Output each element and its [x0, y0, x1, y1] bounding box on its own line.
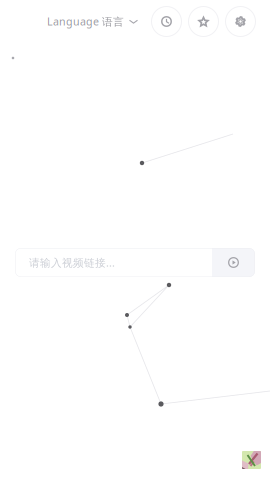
staticText: 请输入视频链接...: [29, 255, 115, 270]
staticText: Language 语言: [47, 14, 124, 29]
button[interactable]: 请输入视频链接...: [15, 248, 212, 277]
button[interactable]: Settings: [225, 6, 256, 37]
button[interactable]: History: [151, 6, 182, 37]
button[interactable]: Language 语言: [47, 8, 138, 35]
button[interactable]: Parse video link: [212, 248, 255, 277]
button[interactable]: Favorites: [188, 6, 219, 37]
